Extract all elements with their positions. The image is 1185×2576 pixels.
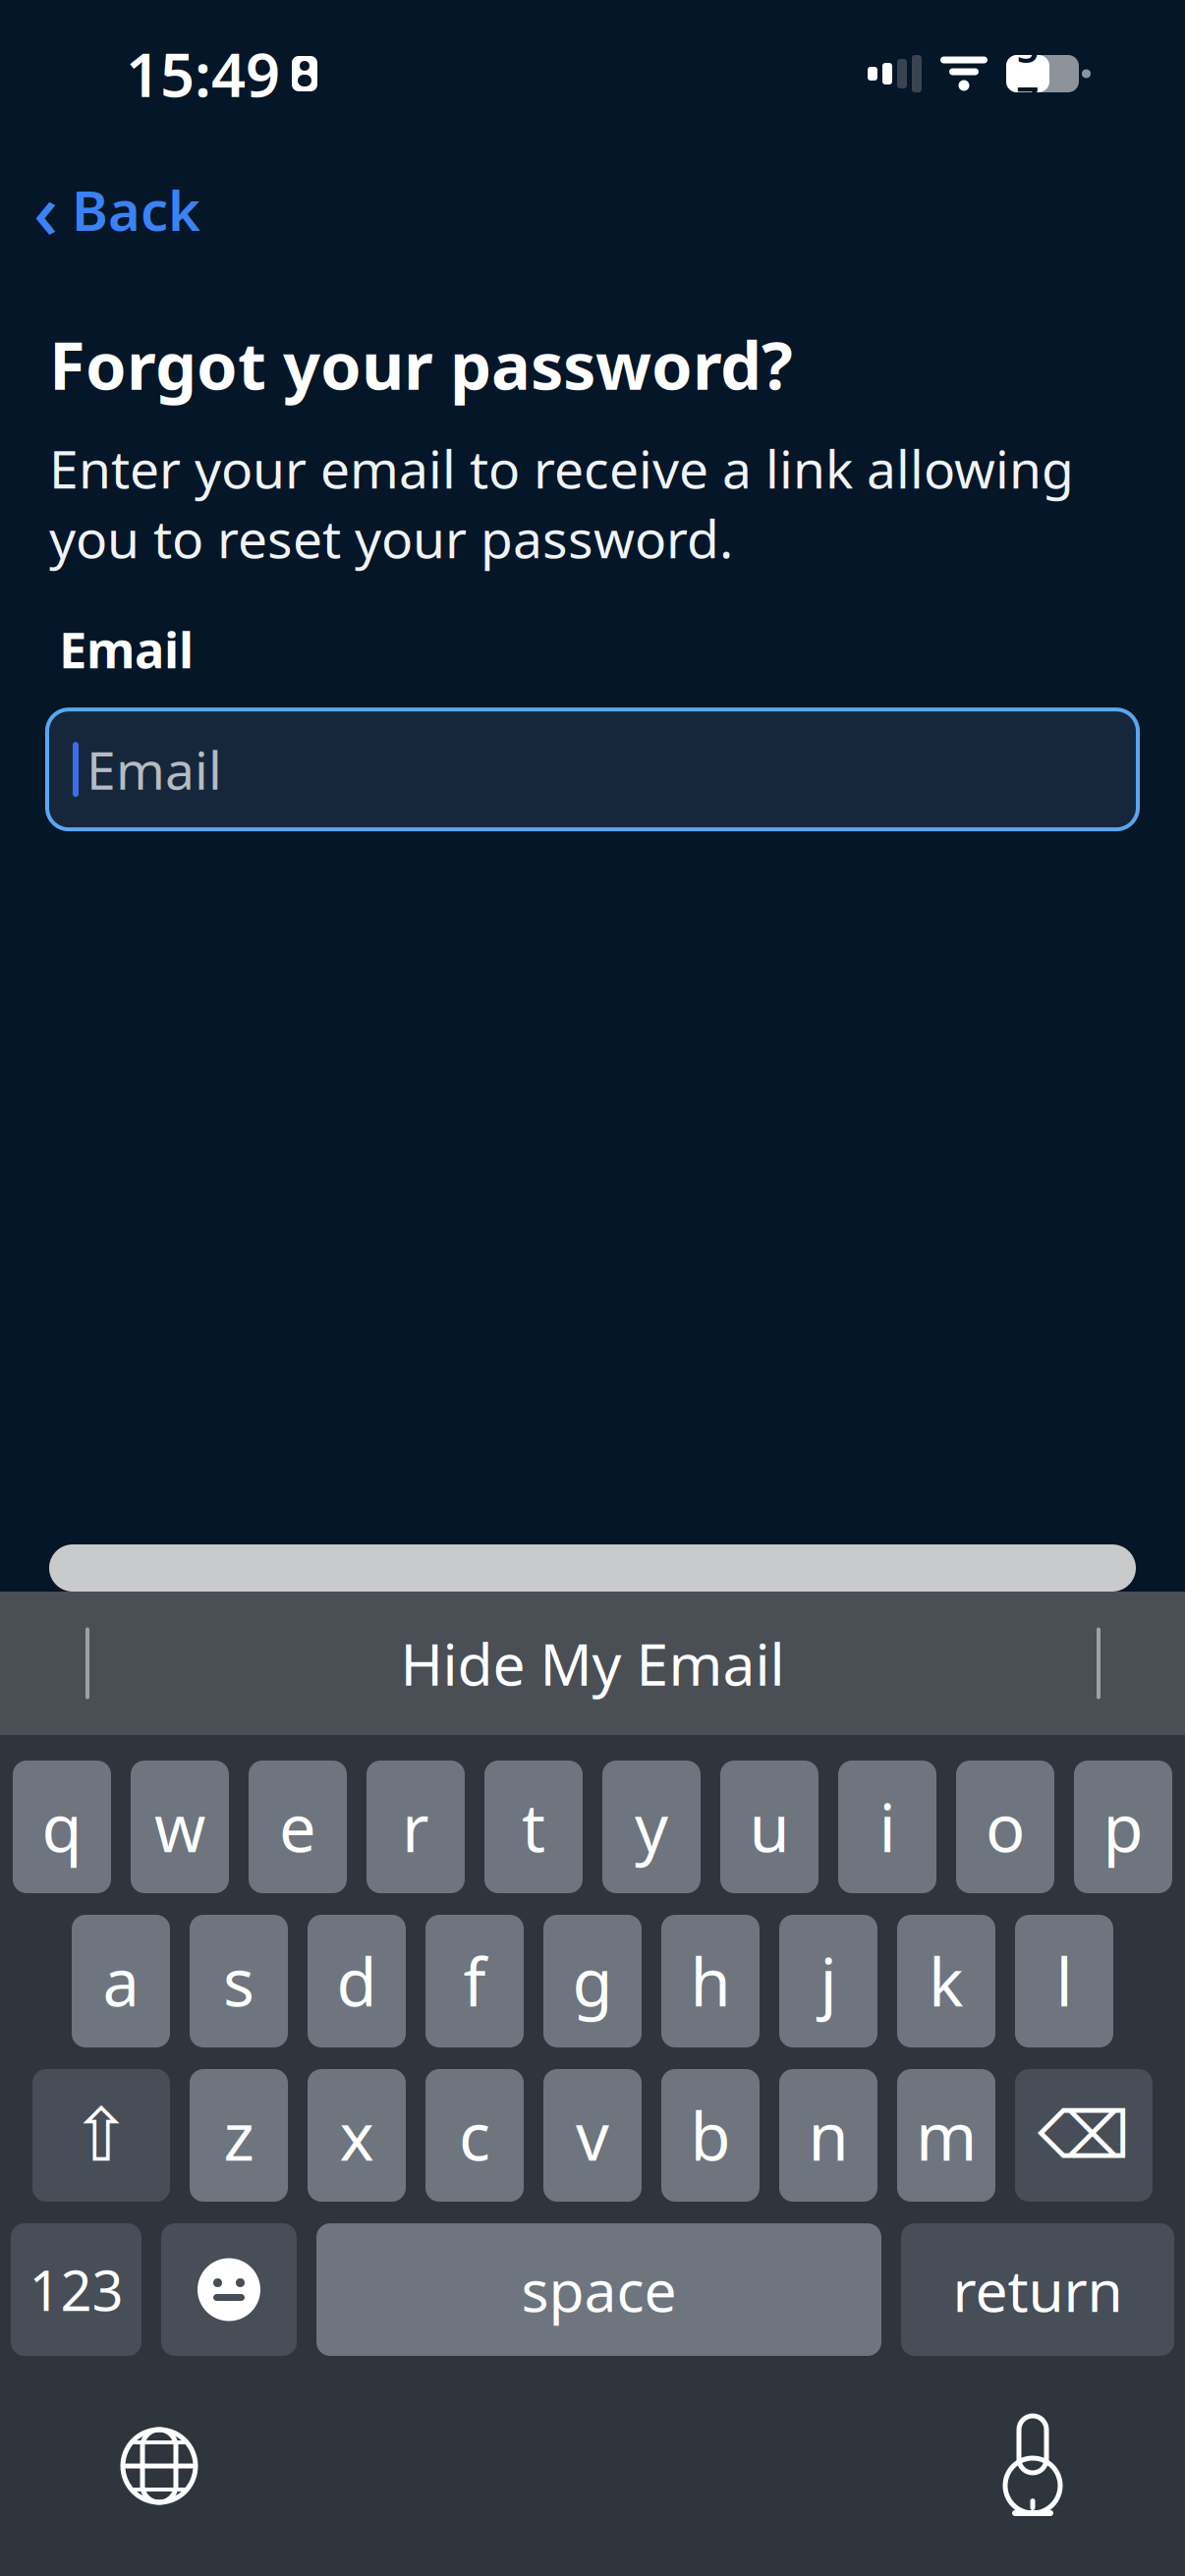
button[interactable]: Email	[47, 710, 1138, 829]
staticText: 123	[29, 2253, 123, 2326]
staticText: space	[521, 2251, 677, 2328]
staticText: ⇧	[70, 2094, 132, 2177]
button[interactable]: Dictation	[969, 2383, 1097, 2548]
button[interactable]: h	[661, 1915, 760, 2047]
staticText: 15:49	[126, 34, 280, 114]
button[interactable]: n	[779, 2069, 877, 2202]
staticText: Email	[59, 616, 194, 682]
button[interactable]: a	[72, 1915, 170, 2047]
button[interactable]: x	[308, 2069, 406, 2202]
staticText: i	[879, 1783, 896, 1870]
staticText: n	[808, 2092, 848, 2179]
button[interactable]: w	[131, 1761, 229, 1893]
button[interactable]: t	[484, 1761, 583, 1893]
button[interactable]: u	[720, 1761, 818, 1893]
staticText: d	[337, 1938, 377, 2025]
staticText: ⌫	[1038, 2098, 1130, 2173]
button[interactable]: c	[425, 2069, 524, 2202]
staticText: w	[154, 1783, 205, 1870]
staticText: Forgot your password?	[49, 321, 793, 408]
staticText: p	[1103, 1783, 1143, 1870]
button[interactable]: y	[602, 1761, 701, 1893]
staticText: Email	[86, 735, 222, 804]
staticText: y	[635, 1783, 668, 1870]
button[interactable]: Delete	[1015, 2069, 1153, 2202]
staticText: b	[690, 2092, 731, 2179]
button[interactable]: r	[367, 1761, 465, 1893]
staticText: Back	[72, 173, 200, 246]
staticText: x	[339, 2092, 374, 2179]
button[interactable]: k	[897, 1915, 995, 2047]
button[interactable]: Hide My Email	[341, 1605, 844, 1721]
button[interactable]: m	[897, 2069, 995, 2202]
button[interactable]: q	[13, 1761, 111, 1893]
button[interactable]: v	[543, 2069, 642, 2202]
staticText: f	[463, 1938, 486, 2025]
staticText: t	[522, 1783, 545, 1870]
button[interactable]: b	[661, 2069, 760, 2202]
button[interactable]: s	[190, 1915, 288, 2047]
staticText: h	[690, 1938, 731, 2025]
button[interactable]: ‹	[0, 147, 236, 272]
staticText: Enter your email to receive a link allow…	[49, 433, 1074, 573]
button[interactable]: 123	[11, 2223, 141, 2356]
button[interactable]: Shift	[32, 2069, 170, 2202]
staticText: c	[459, 2092, 490, 2179]
button[interactable]: f	[425, 1915, 524, 2047]
button[interactable]: i	[838, 1761, 936, 1893]
staticText: e	[279, 1783, 316, 1870]
button[interactable]: p	[1074, 1761, 1172, 1893]
staticText: a	[103, 1938, 139, 2025]
staticText: l	[1056, 1938, 1072, 2025]
staticText: s	[223, 1938, 254, 2025]
staticText: m	[916, 2092, 977, 2179]
button[interactable]: e	[249, 1761, 347, 1893]
button[interactable]: d	[308, 1915, 406, 2047]
staticText: ‹	[33, 159, 58, 260]
staticText: o	[986, 1783, 1025, 1870]
staticText: 57	[1016, 22, 1039, 126]
staticText: k	[929, 1938, 964, 2025]
button[interactable]: z	[190, 2069, 288, 2202]
staticText: q	[42, 1783, 82, 1870]
staticText: z	[224, 2092, 254, 2179]
button[interactable]: o	[956, 1761, 1054, 1893]
staticText: u	[749, 1783, 790, 1870]
staticText: r	[402, 1783, 429, 1870]
button[interactable]: space	[316, 2223, 881, 2356]
button[interactable]: Emoji	[161, 2223, 297, 2356]
staticText: Hide My Email	[400, 1625, 785, 1702]
staticText: v	[576, 2092, 609, 2179]
button[interactable]: return	[901, 2223, 1174, 2356]
staticText: j	[820, 1938, 837, 2025]
button[interactable]: Reset password	[0, 1544, 1185, 1592]
staticText: g	[572, 1938, 613, 2025]
staticText: return	[953, 2251, 1123, 2328]
button[interactable]: g	[543, 1915, 642, 2047]
button[interactable]: l	[1015, 1915, 1113, 2047]
button[interactable]: j	[779, 1915, 877, 2047]
button[interactable]: Next keyboard	[86, 2397, 232, 2535]
